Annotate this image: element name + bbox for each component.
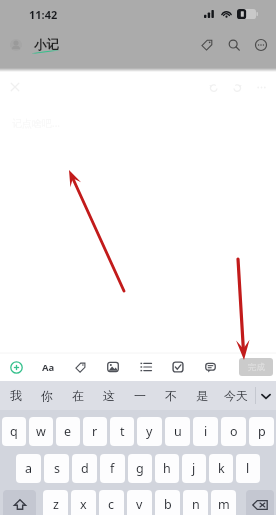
staticText: m [218, 496, 230, 513]
button[interactable]: Close [4, 76, 26, 98]
staticText: d [81, 460, 89, 477]
button[interactable]: 一 [124, 381, 155, 410]
button[interactable]: g [128, 454, 152, 483]
button[interactable]: j [182, 454, 206, 483]
staticText: Aa [42, 361, 55, 374]
staticText: k [218, 460, 225, 477]
staticText: o [230, 423, 238, 440]
button[interactable]: 你 [31, 381, 62, 410]
button[interactable]: 今天 [217, 381, 255, 410]
button[interactable]: n [183, 490, 208, 515]
button[interactable]: Expand candidates [256, 381, 276, 410]
staticText: q [10, 423, 18, 440]
button[interactable]: m [211, 490, 236, 515]
button[interactable]: q [2, 417, 26, 446]
button[interactable]: h [155, 454, 179, 483]
button[interactable]: Text style [32, 353, 64, 381]
staticText: i [204, 423, 208, 440]
button[interactable]: v [127, 490, 152, 515]
staticText: z [53, 496, 59, 513]
button[interactable]: u [165, 417, 190, 446]
staticText: 是 [196, 388, 208, 403]
staticText: y [146, 423, 153, 440]
button[interactable]: Backspace [246, 490, 274, 515]
button[interactable]: Tags [195, 33, 219, 57]
staticText: a [25, 460, 33, 477]
button[interactable]: o [221, 417, 246, 446]
staticText: b [164, 496, 172, 513]
button[interactable]: 是 [186, 381, 217, 410]
button[interactable]: Account [10, 39, 22, 51]
button[interactable]: l [236, 454, 260, 483]
staticText: f [110, 460, 115, 477]
staticText: v [136, 496, 143, 513]
staticText: r [92, 423, 98, 440]
button[interactable]: w [29, 417, 53, 446]
staticText: h [163, 460, 171, 477]
button[interactable]: a [16, 454, 41, 483]
button[interactable]: Image [97, 353, 129, 381]
button[interactable]: f [100, 454, 125, 483]
staticText: 完成 [248, 362, 265, 373]
staticText: 在 [72, 388, 84, 403]
button[interactable]: 我 [0, 381, 31, 410]
button[interactable]: x [71, 490, 96, 515]
staticText: u [174, 423, 182, 440]
button[interactable]: i [193, 417, 218, 446]
staticText: s [54, 460, 60, 477]
button[interactable]: k [209, 454, 233, 483]
button[interactable]: c [99, 490, 124, 515]
button[interactable]: Add [0, 353, 32, 381]
staticText: 一 [134, 388, 146, 403]
button[interactable]: 在 [62, 381, 93, 410]
staticText: j [192, 460, 196, 477]
button[interactable]: Shift [3, 490, 36, 515]
button[interactable]: 这 [93, 381, 124, 410]
staticText: c [108, 496, 115, 513]
staticText: e [64, 423, 72, 440]
button[interactable]: Tag [64, 353, 97, 381]
button[interactable]: Search [222, 33, 246, 57]
staticText: 小记 [34, 37, 59, 53]
button[interactable]: s [44, 454, 69, 483]
staticText: w [36, 423, 46, 440]
staticText: 你 [41, 388, 53, 403]
button[interactable]: d [72, 454, 97, 483]
staticText: 不 [165, 388, 177, 403]
staticText: p [258, 423, 266, 440]
staticText: 这 [103, 388, 115, 403]
staticText: 11:42 [29, 7, 58, 22]
staticText: n [192, 496, 200, 513]
button[interactable]: y [137, 417, 162, 446]
button[interactable]: 不 [155, 381, 186, 410]
button[interactable]: Checklist [162, 353, 194, 381]
button[interactable]: More [249, 33, 273, 57]
button[interactable]: b [155, 490, 180, 515]
button[interactable]: List [129, 353, 162, 381]
button[interactable]: 完成 [239, 358, 273, 376]
button[interactable]: Comment [194, 353, 227, 381]
staticText: l [246, 460, 250, 477]
staticText: 我 [10, 388, 22, 403]
button[interactable]: t [110, 417, 134, 446]
button[interactable]: p [249, 417, 274, 446]
staticText: 今天 [224, 388, 248, 403]
staticText: g [136, 460, 144, 477]
staticText: x [80, 496, 87, 513]
button[interactable]: e [56, 417, 80, 446]
button[interactable]: r [83, 417, 107, 446]
staticText: t [120, 423, 125, 440]
button[interactable]: z [43, 490, 68, 515]
